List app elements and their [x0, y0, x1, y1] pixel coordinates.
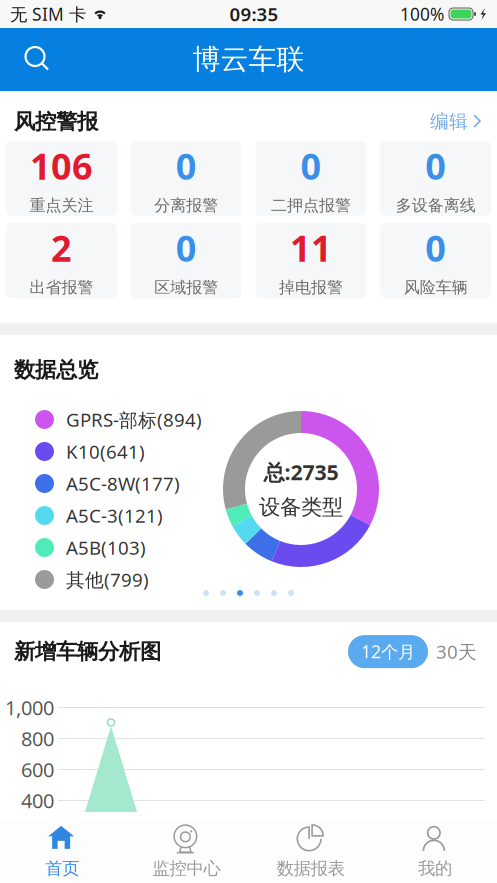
- staticText: 掉电报警: [279, 278, 343, 297]
- staticText: 区域报警: [154, 278, 218, 297]
- staticText: 0: [176, 142, 197, 190]
- button[interactable]: 我的: [373, 820, 497, 883]
- button[interactable]: 数据报表: [248, 820, 373, 883]
- staticText: 400: [21, 787, 54, 814]
- button[interactable]: 搜索: [14, 36, 60, 82]
- staticText: 数据报表: [277, 858, 345, 879]
- staticText: 12个月: [361, 640, 415, 663]
- staticText: 总:2735: [263, 458, 338, 486]
- button[interactable]: 11: [255, 223, 366, 298]
- staticText: A5C-8W(177): [66, 471, 180, 496]
- staticText: A5B(103): [66, 535, 146, 560]
- button[interactable]: 首页: [0, 820, 124, 883]
- staticText: 风控警报: [14, 108, 98, 135]
- button[interactable]: 106: [6, 141, 117, 216]
- button[interactable]: 0: [131, 141, 242, 216]
- staticText: 我的: [418, 858, 452, 879]
- staticText: 博云车联: [192, 42, 304, 77]
- button[interactable]: 0: [380, 223, 491, 298]
- staticText: 100%: [400, 2, 444, 25]
- staticText: 0: [425, 224, 446, 272]
- staticText: 设备类型: [259, 494, 343, 520]
- button[interactable]: 监控中心: [124, 820, 248, 883]
- staticText: 0: [425, 142, 446, 190]
- button[interactable]: 12个月: [348, 635, 428, 668]
- staticText: 0: [176, 224, 197, 272]
- staticText: 1,000: [5, 694, 54, 721]
- button[interactable]: 0: [255, 141, 366, 216]
- staticText: 2: [51, 224, 72, 272]
- button[interactable]: 30天: [428, 634, 485, 669]
- staticText: 分离报警: [154, 196, 218, 215]
- staticText: 重点关注: [29, 196, 93, 215]
- staticText: 30天: [436, 639, 477, 664]
- staticText: 0: [300, 142, 321, 190]
- staticText: 首页: [45, 858, 79, 879]
- staticText: K10(641): [66, 439, 145, 464]
- button[interactable]: 2: [6, 223, 117, 298]
- staticText: 600: [21, 756, 54, 783]
- staticText: A5C-3(121): [66, 503, 163, 528]
- button[interactable]: 0: [131, 223, 242, 298]
- staticText: 800: [21, 725, 54, 752]
- staticText: 11: [290, 224, 332, 272]
- staticText: 风险车辆: [404, 278, 468, 297]
- staticText: 编辑: [430, 110, 468, 133]
- staticText: 09:35: [229, 2, 278, 26]
- button[interactable]: 0: [380, 141, 491, 216]
- staticText: 监控中心: [152, 858, 220, 879]
- staticText: 数据总览: [14, 357, 98, 383]
- staticText: 出省报警: [29, 278, 93, 297]
- staticText: 新增车辆分析图: [14, 638, 161, 665]
- staticText: 无 SIM 卡: [10, 2, 86, 25]
- button[interactable]: 编辑: [430, 102, 481, 141]
- staticText: GPRS-部标(894): [66, 407, 202, 432]
- staticText: 106: [30, 142, 93, 190]
- staticText: 多设备离线: [396, 196, 476, 215]
- staticText: 二押点报警: [271, 196, 351, 215]
- staticText: 其他(799): [66, 567, 149, 592]
